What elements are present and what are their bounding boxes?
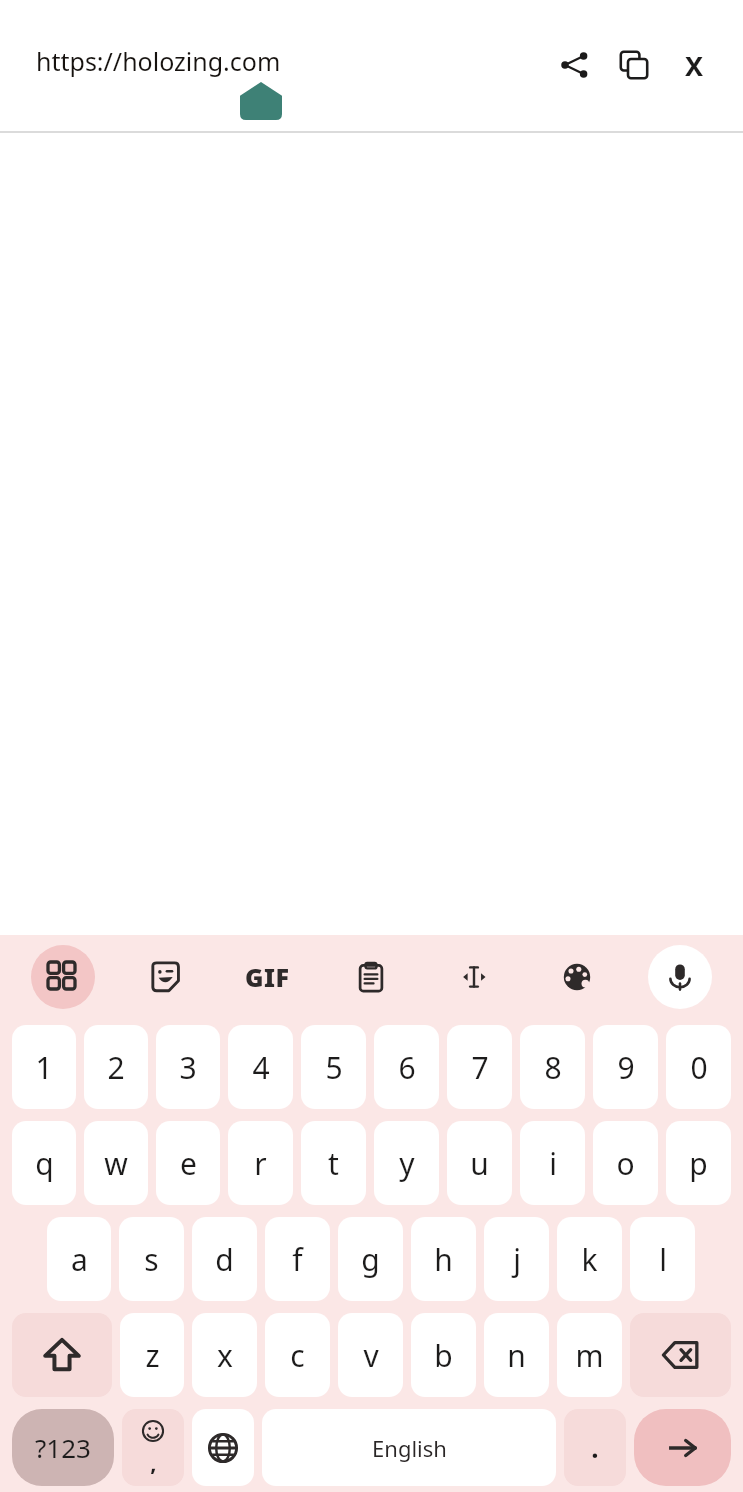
button[interactable]: 9 [593,1025,658,1109]
staticText: c [290,1335,305,1376]
button[interactable]: 1 [12,1025,76,1109]
button[interactable]: a [47,1217,111,1301]
button[interactable]: 5 [301,1025,366,1109]
button[interactable]: Backspace [630,1313,731,1397]
staticText: https://holozing.com [36,44,281,78]
button[interactable]: o [593,1121,658,1205]
button[interactable]: Stickers [114,935,216,1019]
staticText: 9 [617,1047,635,1088]
staticText: q [35,1143,54,1184]
button[interactable]: Change language [192,1409,254,1486]
button[interactable]: 3 [156,1025,220,1109]
button[interactable]: q [12,1121,76,1205]
button[interactable]: p [666,1121,731,1205]
button[interactable]: 6 [374,1025,439,1109]
button[interactable]: GIF [216,935,319,1019]
staticText: n [507,1335,526,1376]
staticText: g [361,1239,380,1280]
button[interactable]: x [192,1313,257,1397]
button[interactable]: s [119,1217,184,1301]
staticText: z [145,1335,160,1376]
button[interactable]: b [411,1313,476,1397]
button[interactable]: Enter [634,1409,731,1486]
staticText: a [71,1239,88,1280]
staticText: w [104,1143,128,1184]
staticText: r [254,1143,267,1184]
button[interactable]: Shift [12,1313,112,1397]
staticText: u [470,1143,489,1184]
staticText: 4 [252,1047,270,1088]
staticText: y [399,1143,415,1184]
staticText: m [575,1335,604,1376]
button[interactable]: ?123 [12,1409,114,1486]
staticText: 2 [107,1047,125,1088]
button[interactable]: r [228,1121,293,1205]
button[interactable]: f [265,1217,330,1301]
button[interactable]: Text editing [422,935,525,1019]
button[interactable]: m [557,1313,622,1397]
button[interactable]: Copy [607,38,661,92]
staticText: GIF [245,960,290,994]
button[interactable]: Widgets [12,935,114,1019]
staticText: k [581,1239,598,1280]
staticText: t [328,1143,339,1184]
button[interactable]: v [338,1313,403,1397]
button[interactable]: 8 [520,1025,585,1109]
button[interactable]: l [630,1217,695,1301]
staticText: , [150,1447,157,1477]
staticText: . [591,1430,599,1465]
button[interactable]: English [262,1409,556,1486]
staticText: s [144,1239,159,1280]
staticText: 0 [690,1047,708,1088]
staticText: i [549,1143,557,1184]
button[interactable]: 4 [228,1025,293,1109]
staticText: English [372,1433,447,1463]
button[interactable]: i [520,1121,585,1205]
staticText: f [292,1239,303,1280]
staticText: j [513,1239,521,1280]
staticText: v [363,1335,379,1376]
button[interactable]: y [374,1121,439,1205]
staticText: ?123 [35,1430,91,1465]
button[interactable]: g [338,1217,403,1301]
staticText: 5 [325,1047,343,1088]
button[interactable]: Share [547,38,601,92]
button[interactable]: d [192,1217,257,1301]
button[interactable]: c [265,1313,330,1397]
button[interactable]: h [411,1217,476,1301]
staticText: h [434,1239,453,1280]
staticText: X [685,47,704,84]
staticText: 3 [179,1047,197,1088]
button[interactable]: Close [667,38,721,92]
staticText: e [180,1143,197,1184]
button[interactable]: n [484,1313,549,1397]
staticText: p [689,1143,708,1184]
button[interactable]: 2 [84,1025,148,1109]
staticText: x [217,1335,233,1376]
button[interactable]: z [120,1313,184,1397]
button[interactable]: e [156,1121,220,1205]
button[interactable]: . [564,1409,626,1486]
button[interactable]: u [447,1121,512,1205]
staticText: d [215,1239,234,1280]
button[interactable]: 7 [447,1025,512,1109]
button[interactable]: Clipboard [319,935,422,1019]
staticText: 1 [35,1047,53,1088]
staticText: 6 [398,1047,416,1088]
button[interactable]: j [484,1217,549,1301]
staticText: l [659,1239,667,1280]
staticText: o [616,1143,635,1184]
staticText: 8 [544,1047,562,1088]
staticText: b [434,1335,453,1376]
button[interactable]: 0 [666,1025,731,1109]
button[interactable]: Emoji and comma [122,1409,184,1486]
button[interactable]: Voice input [628,935,731,1019]
button[interactable]: k [557,1217,622,1301]
button[interactable]: Theme [525,935,628,1019]
button[interactable]: w [84,1121,148,1205]
staticText: 7 [471,1047,489,1088]
button[interactable]: t [301,1121,366,1205]
